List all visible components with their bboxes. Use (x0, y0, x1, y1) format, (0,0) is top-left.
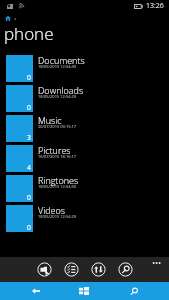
staticText: Downloads (38, 84, 84, 96)
button[interactable]: 0 (0, 85, 169, 115)
staticText: Videos (38, 204, 65, 216)
staticText: 18/05/2015 12:54:29 (38, 94, 77, 99)
button[interactable]: Sort (91, 262, 106, 277)
button[interactable]: Back (30, 282, 42, 300)
button[interactable]: 0 (0, 55, 169, 85)
button[interactable]: 0 (0, 205, 169, 235)
staticText: Pictures (38, 144, 71, 156)
staticText: 0 (27, 223, 31, 232)
staticText: 16/07/2015 18:16:17 (38, 154, 77, 159)
staticText: 18/05/2015 12:54:50 (38, 184, 77, 189)
staticText: 3 (27, 133, 31, 142)
staticText: 0 (27, 103, 31, 112)
staticText: 18/05/2015 12:54:29 (38, 214, 77, 219)
button[interactable]: 3 (0, 115, 169, 145)
staticText: 4 (27, 163, 31, 172)
button[interactable]: Start (78, 282, 90, 300)
staticText: 13:26 (146, 1, 164, 11)
staticText: Music (38, 114, 62, 126)
button[interactable]: 0 (0, 175, 169, 205)
button[interactable]: More options (148, 257, 166, 270)
staticText: 0 (27, 193, 31, 202)
staticText: phone (4, 22, 54, 45)
staticText: Ringtones (38, 174, 79, 186)
button[interactable]: Select (64, 262, 79, 277)
staticText: 26/07/2015 09:15:17 (38, 124, 77, 129)
staticText: Documents (38, 54, 85, 66)
button[interactable]: 4 (0, 145, 169, 175)
staticText: 0 (27, 73, 31, 82)
button[interactable]: Home (5, 16, 11, 21)
staticText: 18/05/2015 12:54:49 (38, 64, 77, 69)
button[interactable]: Search (128, 282, 140, 300)
button[interactable]: Search (118, 262, 133, 277)
button[interactable]: New folder (37, 262, 52, 277)
